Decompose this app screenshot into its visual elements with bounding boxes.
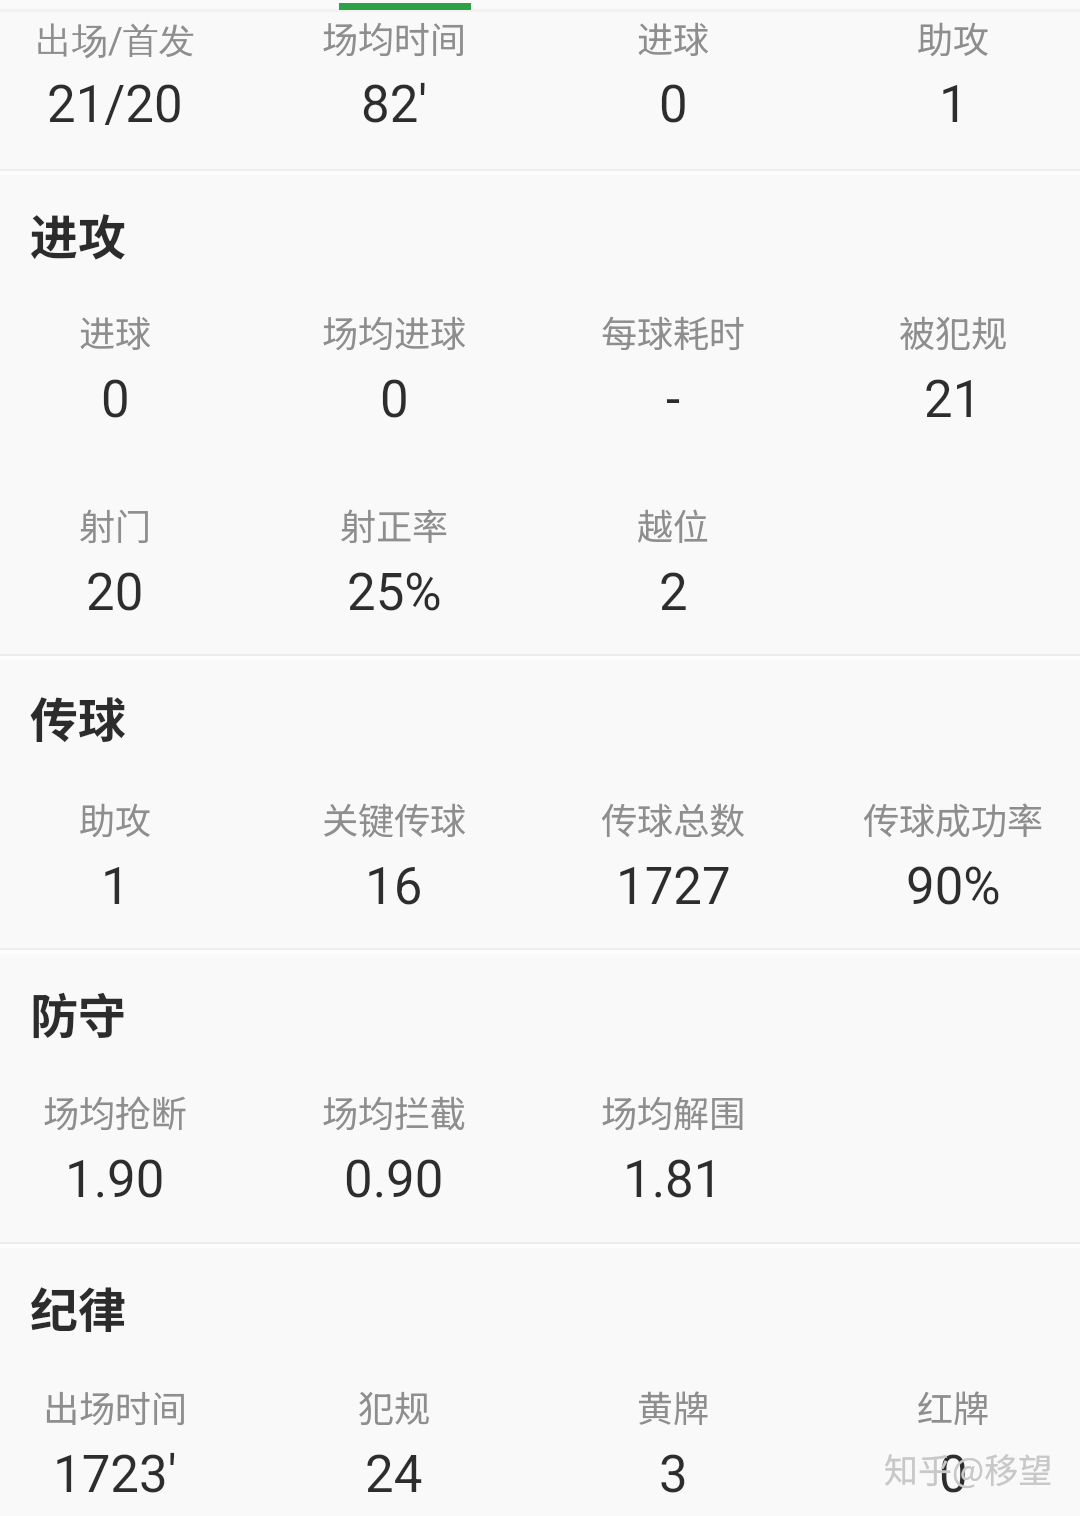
staticText: 3 <box>659 1445 688 1505</box>
staticText: 24 <box>365 1445 423 1505</box>
button[interactable]: 射门 <box>0 482 245 623</box>
staticText: 关键传球 <box>322 792 467 844</box>
button[interactable]: 进球 <box>0 289 245 430</box>
button[interactable]: 助攻 <box>823 0 1080 135</box>
staticText: 0 <box>939 1445 968 1505</box>
staticText: 场均解围 <box>601 1085 746 1137</box>
button[interactable]: 传球总数 <box>543 776 803 917</box>
button[interactable]: 传球成功率 <box>823 776 1080 917</box>
staticText: 传球 <box>30 682 127 752</box>
staticText: 场均时间 <box>322 11 467 63</box>
staticText: 0 <box>380 370 409 430</box>
staticText: 1.90 <box>65 1150 165 1210</box>
button[interactable]: 场均抢断 <box>0 1069 245 1210</box>
button[interactable]: 出场时间 <box>0 1364 245 1505</box>
staticText: 1727 <box>616 857 731 917</box>
button[interactable]: 场均解围 <box>543 1069 803 1210</box>
staticText: 进攻 <box>30 199 127 269</box>
staticText: 出场时间 <box>43 1380 188 1432</box>
staticText: 犯规 <box>358 1380 431 1432</box>
staticText: 射门 <box>79 498 152 550</box>
staticText: 知乎@移望 <box>884 1444 1053 1493</box>
staticText: 出场/首发 <box>36 18 195 63</box>
staticText: 0.90 <box>344 1150 444 1210</box>
staticText: 防守 <box>30 978 127 1048</box>
button[interactable]: 红牌 <box>823 1364 1080 1505</box>
staticText: - <box>666 370 681 430</box>
staticText: 黄牌 <box>637 1380 710 1432</box>
button[interactable]: 每球耗时 <box>543 289 803 430</box>
staticText: 20 <box>86 563 144 623</box>
staticText: 1.81 <box>623 1150 723 1210</box>
staticText: 助攻 <box>79 792 152 844</box>
staticText: 越位 <box>637 498 710 550</box>
button[interactable]: 场均进球 <box>264 289 524 430</box>
staticText: 纪律 <box>30 1272 127 1342</box>
button[interactable]: 进球 <box>543 0 803 135</box>
button[interactable]: 出场/首发 <box>0 0 245 135</box>
staticText: 助攻 <box>917 11 990 63</box>
staticText: 2 <box>659 563 688 623</box>
button[interactable]: 场均拦截 <box>264 1069 524 1210</box>
button[interactable]: 场均时间 <box>264 0 524 135</box>
staticText: 1 <box>101 857 130 917</box>
button[interactable]: 被犯规 <box>823 289 1080 430</box>
staticText: 传球总数 <box>601 792 746 844</box>
staticText: 红牌 <box>917 1380 990 1432</box>
staticText: 场均拦截 <box>322 1085 467 1137</box>
staticText: 每球耗时 <box>601 305 746 357</box>
staticText: 0 <box>101 370 130 430</box>
staticText: 场均进球 <box>322 305 467 357</box>
staticText: 21 <box>924 370 982 430</box>
staticText: 21/20 <box>47 75 183 135</box>
staticText: 1723' <box>53 1445 177 1505</box>
staticText: 82' <box>361 75 428 135</box>
staticText: 射正率 <box>340 498 449 550</box>
button[interactable]: 关键传球 <box>264 776 524 917</box>
staticText: 被犯规 <box>899 305 1008 357</box>
button[interactable]: 助攻 <box>0 776 245 917</box>
staticText: 场均抢断 <box>43 1085 188 1137</box>
staticText: 进球 <box>637 11 710 63</box>
button[interactable]: 犯规 <box>264 1364 524 1505</box>
staticText: 25% <box>347 563 442 623</box>
button[interactable]: 黄牌 <box>543 1364 803 1505</box>
staticText: 16 <box>365 857 423 917</box>
staticText: 0 <box>659 75 688 135</box>
button[interactable]: 射正率 <box>264 482 524 623</box>
staticText: 传球成功率 <box>863 792 1044 844</box>
staticText: 1 <box>939 75 968 135</box>
staticText: 进球 <box>79 305 152 357</box>
staticText: 90% <box>906 857 1001 917</box>
button[interactable]: 越位 <box>543 482 803 623</box>
